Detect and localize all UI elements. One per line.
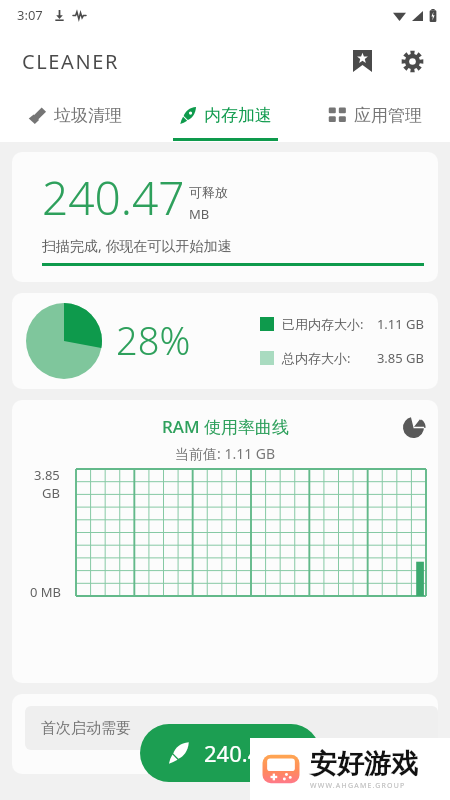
staticText: 首次启动需要: [41, 719, 131, 738]
button[interactable]: 应用管理: [300, 92, 450, 138]
staticText: RAM 历史使用: [162, 756, 265, 774]
staticText: RAM 使用率曲线: [162, 415, 289, 438]
button[interactable]: 内存加速: [150, 92, 300, 138]
staticText: 3.85: [34, 466, 60, 484]
staticText: 总内存大小:: [282, 349, 351, 367]
staticText: 3.85 GB: [366, 349, 424, 367]
button[interactable]: Settings: [392, 41, 432, 81]
staticText: 可释放: [189, 184, 228, 200]
staticText: 扫描完成, 你现在可以开始加速: [42, 236, 232, 255]
staticText: 0 MB: [30, 583, 62, 601]
button[interactable]: 首次启动需要: [12, 694, 438, 774]
staticText: CLEANER: [22, 48, 119, 75]
staticText: 1.11 GB: [366, 315, 424, 333]
button[interactable]: 240.47: [12, 152, 438, 282]
staticText: 已用内存大小:: [282, 315, 364, 333]
staticText: WWW.AHGAME.GROUP: [310, 781, 406, 791]
button[interactable]: Chart type: [398, 412, 428, 442]
staticText: 安好游戏: [310, 747, 418, 781]
staticText: 3:07: [17, 6, 43, 24]
staticText: 当前值: 1.11 GB: [175, 444, 276, 463]
staticText: 内存加速: [204, 105, 272, 126]
staticText: 28%: [116, 314, 191, 366]
staticText: 应用管理: [354, 105, 422, 126]
button[interactable]: 垃圾清理: [0, 92, 150, 138]
staticText: 垃圾清理: [54, 105, 122, 126]
button[interactable]: 28%: [12, 293, 438, 389]
button[interactable]: Bookmark: [342, 41, 382, 81]
staticText: 240.47: [42, 166, 185, 229]
button[interactable]: RAM 使用率曲线: [12, 400, 438, 683]
button[interactable]: 240.47: [140, 724, 320, 782]
staticText: MB: [189, 205, 210, 223]
staticText: 240.47: [204, 738, 273, 768]
staticText: GB: [42, 484, 60, 502]
